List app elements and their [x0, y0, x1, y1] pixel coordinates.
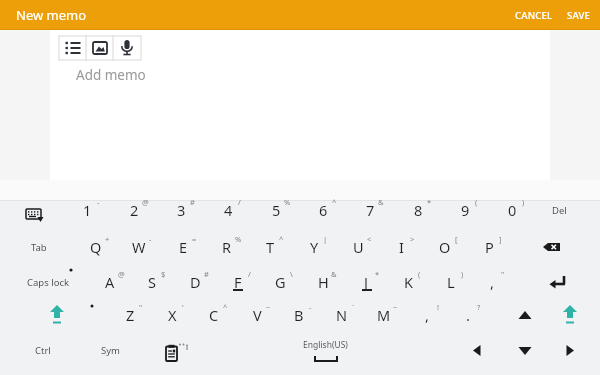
button[interactable]: 1 [65, 197, 109, 223]
staticText: < [367, 234, 372, 244]
button[interactable]: X [150, 302, 194, 328]
staticText: ] [499, 234, 502, 244]
button[interactable] [113, 36, 141, 60]
staticText: * [375, 269, 380, 279]
button[interactable]: . [446, 302, 490, 328]
staticText: 1 [83, 200, 92, 220]
button[interactable] [542, 240, 562, 254]
staticText: % [284, 197, 291, 207]
button[interactable]: E [161, 234, 205, 260]
staticText: " [501, 269, 505, 279]
staticText: N [336, 305, 348, 325]
staticText: @ [142, 197, 149, 207]
staticText: / [248, 269, 251, 279]
button[interactable]: CANCEL [511, 5, 557, 26]
button[interactable]: U [336, 234, 380, 260]
button[interactable]: Tab [17, 234, 61, 260]
staticText: SAVE [567, 9, 591, 22]
staticText: R [222, 237, 232, 257]
button[interactable]: SAVE [563, 5, 595, 26]
button[interactable]: , [470, 269, 514, 295]
button[interactable]: Q [74, 234, 118, 260]
staticText: > [410, 234, 415, 244]
button[interactable]: B [277, 302, 321, 328]
button[interactable]: 7 [348, 197, 392, 223]
button[interactable]: 4 [206, 197, 250, 223]
button[interactable]: 6 [301, 197, 345, 223]
button[interactable]: I [379, 234, 423, 260]
button[interactable] [164, 343, 190, 365]
button[interactable]: Ctrl [21, 337, 65, 363]
button[interactable] [22, 203, 46, 223]
staticText: * [427, 197, 432, 207]
staticText: ( [475, 197, 478, 207]
button[interactable]: H [301, 269, 345, 295]
button[interactable]: K [386, 269, 430, 295]
button[interactable]: T [248, 234, 292, 260]
button[interactable]: P [467, 234, 511, 260]
staticText: ^ [223, 302, 228, 312]
staticText: 5 [272, 200, 281, 220]
button[interactable]: 5 [254, 197, 298, 223]
button[interactable] [59, 36, 87, 60]
staticText: Y [310, 237, 319, 257]
button[interactable]: Y [292, 234, 336, 260]
staticText: & [378, 197, 384, 207]
staticText: English(US) [303, 339, 348, 351]
button[interactable] [47, 304, 67, 326]
button[interactable]: R [205, 234, 249, 260]
button[interactable]: D [173, 269, 217, 295]
button[interactable]: , [405, 302, 449, 328]
button[interactable] [50, 30, 550, 180]
button[interactable] [548, 274, 568, 290]
staticText: ( [418, 269, 421, 279]
button[interactable]: M [362, 302, 406, 328]
button[interactable]: O [423, 234, 467, 260]
staticText: # [190, 197, 195, 207]
staticText: . [466, 305, 470, 325]
button[interactable]: F [216, 269, 260, 295]
button[interactable] [86, 36, 114, 60]
staticText: V [253, 305, 262, 325]
button[interactable]: 9 [443, 197, 487, 223]
staticText: - [309, 302, 312, 312]
button[interactable]: W [117, 234, 161, 260]
button[interactable]: C [192, 302, 236, 328]
staticText: A [105, 272, 115, 292]
button[interactable]: Sym [88, 337, 132, 363]
button[interactable] [470, 344, 484, 358]
button[interactable] [517, 309, 533, 321]
staticText: G [275, 272, 286, 292]
button[interactable]: 3 [159, 197, 203, 223]
staticText: S [148, 272, 156, 292]
staticText: Ctrl [35, 344, 51, 357]
button[interactable]: 8 [396, 197, 440, 223]
staticText: ~ [266, 302, 271, 312]
staticText: J [364, 272, 368, 292]
staticText: New memo [16, 6, 87, 24]
button[interactable]: J [344, 269, 388, 295]
staticText: " [139, 302, 143, 312]
staticText: 2 [130, 200, 139, 220]
button[interactable]: S [130, 269, 174, 295]
button[interactable]: N [320, 302, 364, 328]
button[interactable] [517, 345, 533, 357]
button[interactable] [563, 344, 577, 358]
staticText: 0 [508, 200, 517, 220]
button[interactable]: A [88, 269, 132, 295]
button[interactable] [560, 304, 580, 326]
button[interactable]: L [429, 269, 473, 295]
button[interactable]: English(US) [250, 336, 400, 368]
button[interactable]: Del [537, 197, 581, 223]
button[interactable]: Caps lock [26, 269, 70, 295]
button[interactable]: Z [108, 302, 152, 328]
button[interactable]: V [235, 302, 279, 328]
button[interactable]: Add memo [76, 66, 146, 84]
button[interactable]: G [258, 269, 302, 295]
button[interactable]: 0 [490, 197, 534, 223]
staticText: ) [522, 197, 525, 207]
staticText: X [168, 305, 177, 325]
staticText: , [490, 272, 494, 292]
staticText: & [331, 269, 337, 279]
button[interactable]: 2 [112, 197, 156, 223]
